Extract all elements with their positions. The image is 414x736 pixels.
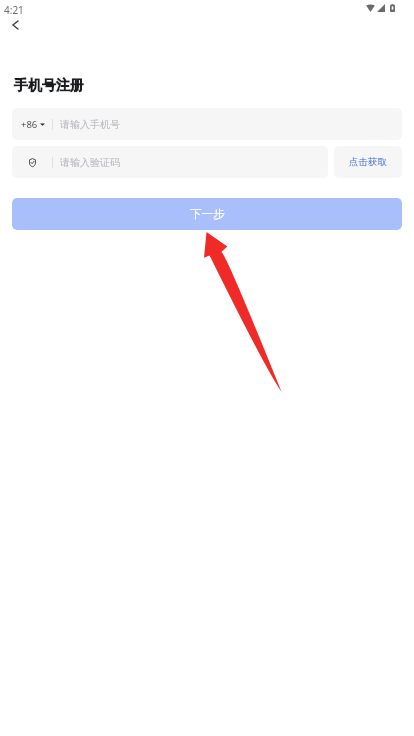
staticText: 4:21 xyxy=(4,3,24,17)
staticText: 请输入手机号 xyxy=(60,118,120,131)
button[interactable]: +86 xyxy=(12,108,402,140)
button[interactable]: Back xyxy=(2,12,28,38)
staticText: 下一步 xyxy=(190,207,225,221)
staticText: +86 xyxy=(21,118,38,131)
staticText: 手机号注册 xyxy=(14,77,84,95)
staticText: 请输入验证码 xyxy=(60,156,120,169)
button[interactable]: 下一步 xyxy=(12,198,402,230)
button[interactable]: +86 xyxy=(12,118,52,131)
button[interactable]: 点击获取 xyxy=(334,146,402,178)
staticText: 点击获取 xyxy=(349,156,387,168)
button[interactable]: 请输入验证码 xyxy=(12,146,328,178)
